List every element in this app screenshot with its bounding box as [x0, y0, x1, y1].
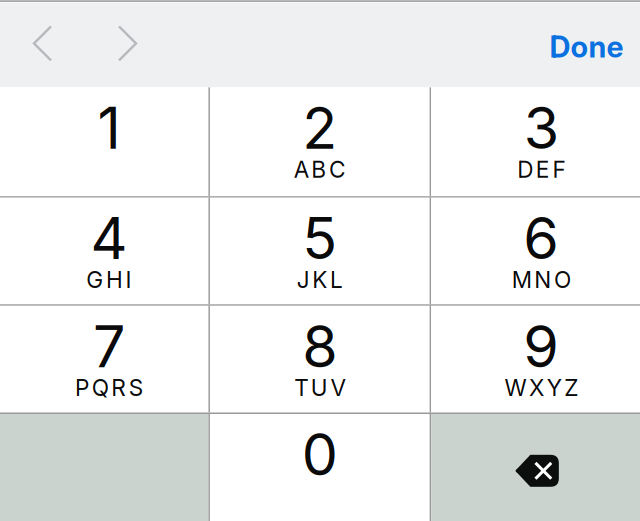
staticText: TUV: [294, 374, 345, 401]
staticText: 6: [523, 203, 559, 273]
button[interactable]: 0: [210, 414, 430, 521]
staticText: 9: [523, 312, 559, 381]
button[interactable]: Next field: [85, 0, 170, 87]
staticText: 7: [93, 312, 125, 381]
staticText: 8: [302, 312, 337, 381]
button[interactable]: 4 GHI: [0, 198, 208, 304]
staticText: 3: [524, 93, 559, 163]
staticText: 5: [302, 203, 337, 273]
button[interactable]: 2 ABC: [210, 87, 430, 196]
button[interactable]: Done: [515, 0, 640, 87]
staticText: ABC: [294, 156, 346, 183]
staticText: 4: [90, 203, 127, 273]
button[interactable]: 6 MNO: [431, 198, 640, 304]
button[interactable]: 1: [0, 87, 208, 196]
staticText: 2: [302, 93, 337, 163]
staticText: GHI: [86, 266, 132, 293]
button[interactable]: 5 JKL: [210, 198, 430, 304]
staticText: 0: [302, 420, 338, 489]
button[interactable]: 8 TUV: [210, 306, 430, 412]
staticText: Done: [549, 29, 623, 65]
staticText: 1: [97, 93, 120, 163]
staticText: WXYZ: [504, 374, 578, 401]
button[interactable]: Delete: [431, 414, 640, 521]
staticText: DEF: [517, 156, 565, 183]
staticText: JKL: [297, 266, 343, 293]
button[interactable]: 3 DEF: [431, 87, 640, 196]
staticText: MNO: [512, 266, 571, 293]
button[interactable]: Previous field: [0, 0, 85, 87]
staticText: PQRS: [75, 374, 143, 401]
button[interactable]: 7 PQRS: [0, 306, 208, 412]
button[interactable]: 9 WXYZ: [431, 306, 640, 412]
